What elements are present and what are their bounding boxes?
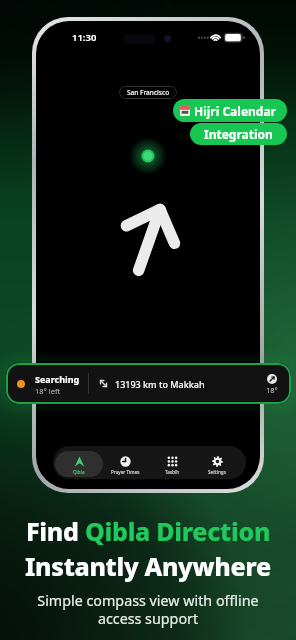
staticText: Searching — [35, 373, 80, 385]
button[interactable]: Tasbih — [148, 451, 196, 477]
staticText: Integration — [204, 126, 273, 142]
button[interactable]: Searching — [6, 363, 291, 404]
staticText: Find — [26, 514, 85, 548]
button[interactable]: Integration — [190, 123, 287, 145]
staticText: 13193 km to Makkah — [115, 378, 205, 390]
staticText: Qibla Direction — [85, 514, 271, 548]
button[interactable]: San Francisco — [119, 86, 177, 99]
staticText: Hijri Calendar — [194, 103, 276, 119]
staticText: 11:30 — [72, 31, 97, 44]
staticText: Prayer Times — [111, 469, 140, 475]
staticText: 18° — [266, 385, 278, 395]
button[interactable]: Prayer Times — [101, 451, 149, 477]
staticText: Settings — [208, 469, 226, 475]
staticText: Tasbih — [165, 469, 180, 475]
staticText: Simple compass view with offline access … — [37, 591, 259, 628]
staticText: Qibla — [73, 469, 85, 475]
staticText: Instantly Anywhere — [25, 549, 271, 583]
staticText: 18° left — [35, 386, 61, 396]
button[interactable]: Settings — [193, 451, 241, 477]
staticText: San Francisco — [127, 88, 170, 97]
button[interactable]: Qibla — [55, 451, 103, 477]
button[interactable]: Hijri Calendar — [173, 99, 287, 122]
